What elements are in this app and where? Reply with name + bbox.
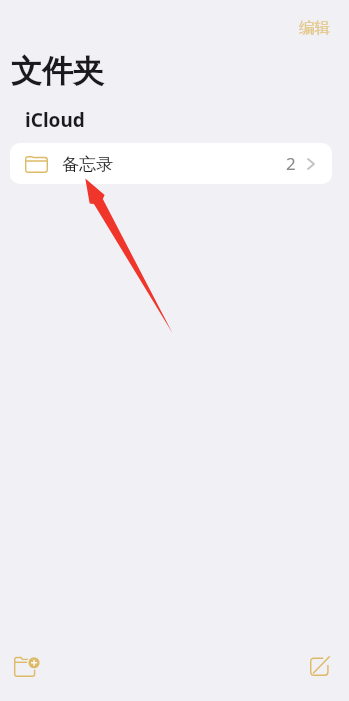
staticText: 编辑 [299,18,330,38]
staticText: 文件夹 [11,52,104,91]
staticText: 2 [286,152,296,175]
button[interactable]: 备忘录 [10,143,332,184]
staticText: 备忘录 [62,154,113,175]
button[interactable]: 编辑 [291,12,338,44]
staticText: iCloud [25,107,85,133]
button[interactable]: New Folder [8,647,46,685]
button[interactable]: Compose [301,647,339,685]
